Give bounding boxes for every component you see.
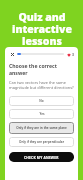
staticText: Only if they are perpendicular xyxy=(19,140,64,144)
staticText: Can two vectors have the same magnitude … xyxy=(9,80,74,90)
button[interactable]: Only if they are in the same plane xyxy=(9,122,74,134)
button[interactable]: Yes xyxy=(9,109,74,119)
button[interactable]: Close xyxy=(9,51,15,57)
button[interactable]: Only if they are perpendicular xyxy=(9,137,74,147)
staticText: Only if they are in the same plane xyxy=(16,126,67,130)
staticText: No xyxy=(39,99,44,103)
staticText: Quiz and interactive lessons xyxy=(12,10,72,48)
button[interactable]: No xyxy=(9,96,74,106)
staticText: 3 xyxy=(72,52,74,57)
staticText: Choose the correct answer xyxy=(9,63,74,77)
button[interactable]: Lives remaining xyxy=(67,52,74,57)
staticText: CHECK MY ANSWER xyxy=(24,155,59,159)
staticText: Yes xyxy=(39,112,45,116)
button[interactable]: CHECK MY ANSWER xyxy=(9,152,74,162)
